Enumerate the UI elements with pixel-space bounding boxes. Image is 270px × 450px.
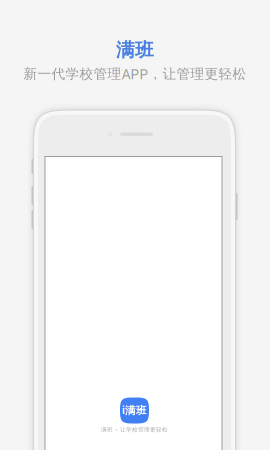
staticText: 新一代学校管理APP，让管理更轻松 (23, 65, 246, 82)
staticText: i满班 (122, 404, 147, 417)
staticText: 满班 (116, 38, 154, 62)
staticText: 满班 – 让学校管理更轻松 (101, 426, 168, 433)
button[interactable]: i满班 (120, 397, 149, 423)
